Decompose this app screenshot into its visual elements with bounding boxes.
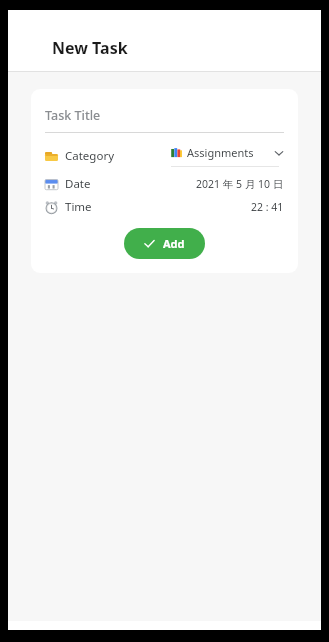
staticText: 2021 年 5 月 10 日 (196, 177, 284, 191)
staticText: 22 : 41 (251, 200, 284, 214)
staticText: Assignments (187, 145, 254, 160)
button[interactable]: Add (124, 228, 205, 259)
button[interactable]: Time (45, 199, 284, 215)
staticText: Time (65, 199, 92, 215)
staticText: Task Title (45, 107, 101, 124)
button[interactable]: Date (45, 176, 284, 192)
staticText: Add (163, 236, 185, 251)
staticText: Category (65, 148, 115, 164)
staticText: Date (65, 176, 91, 192)
staticText: New Task (52, 37, 128, 59)
button[interactable]: Category (45, 145, 284, 167)
other: Open category dropdown (274, 148, 284, 158)
